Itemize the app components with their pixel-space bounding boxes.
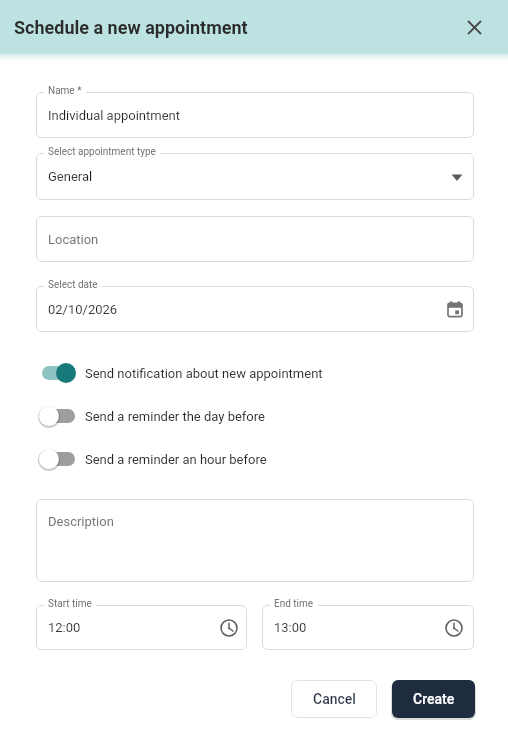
button[interactable]: General	[36, 153, 474, 200]
staticText: Send notification about new appointment	[85, 366, 323, 381]
staticText: Send a reminder an hour before	[85, 452, 267, 467]
staticText: Name *	[48, 85, 82, 97]
staticText: Individual appointment	[48, 108, 181, 123]
staticText: Description	[48, 514, 114, 529]
button[interactable]: Create	[392, 680, 475, 718]
staticText: Send a reminder the day before	[85, 409, 265, 424]
button[interactable]: Cancel	[291, 680, 377, 718]
staticText: Start time	[48, 598, 92, 610]
button[interactable]: 12:00	[36, 605, 247, 650]
button[interactable]: 02/10/2026	[36, 286, 474, 332]
button[interactable]	[462, 15, 486, 39]
button[interactable]	[42, 409, 75, 423]
button[interactable]: Individual appointment	[36, 92, 474, 138]
staticText: 13:00	[274, 620, 307, 635]
staticText: Select date	[48, 279, 98, 291]
button[interactable]: Location	[36, 216, 474, 262]
staticText: Location	[48, 232, 99, 247]
staticText: Create	[413, 691, 455, 707]
staticText: 02/10/2026	[48, 302, 118, 317]
button[interactable]: Description	[36, 499, 474, 582]
button[interactable]	[42, 452, 75, 466]
staticText: 12:00	[48, 620, 81, 635]
button[interactable]: 13:00	[262, 605, 474, 650]
staticText: Schedule a new appointment	[14, 17, 248, 38]
staticText: End time	[274, 598, 314, 610]
button[interactable]	[42, 366, 75, 380]
staticText: Select appointment type	[48, 146, 156, 158]
staticText: General	[48, 169, 93, 184]
staticText: Cancel	[313, 691, 356, 707]
